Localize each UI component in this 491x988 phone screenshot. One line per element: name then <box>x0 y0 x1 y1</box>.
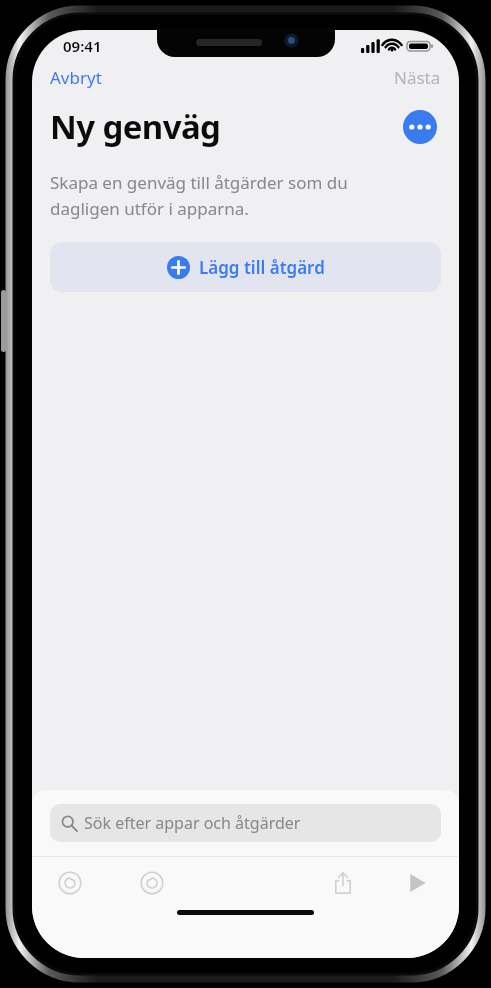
button[interactable]: More options <box>403 110 437 144</box>
staticText: Avbryt <box>50 66 102 89</box>
staticText: Lägg till åtgärd <box>199 256 325 279</box>
button[interactable]: Sök efter appar och åtgärder <box>50 804 441 842</box>
button[interactable]: Redo <box>132 863 172 903</box>
button[interactable]: Undo <box>50 863 90 903</box>
staticText: Skapa en genväg till åtgärder som du dag… <box>50 171 385 220</box>
button[interactable]: Lägg till åtgärd <box>50 242 441 292</box>
button[interactable]: Avbryt <box>32 63 112 92</box>
staticText: Sök efter appar och åtgärder <box>84 812 301 834</box>
button[interactable]: Share <box>323 863 363 903</box>
button[interactable]: Nästa <box>384 63 459 92</box>
staticText: Ny genväg <box>50 104 221 149</box>
staticText: 09:41 <box>63 36 102 56</box>
button[interactable]: Play <box>397 863 437 903</box>
staticText: Nästa <box>394 66 441 89</box>
